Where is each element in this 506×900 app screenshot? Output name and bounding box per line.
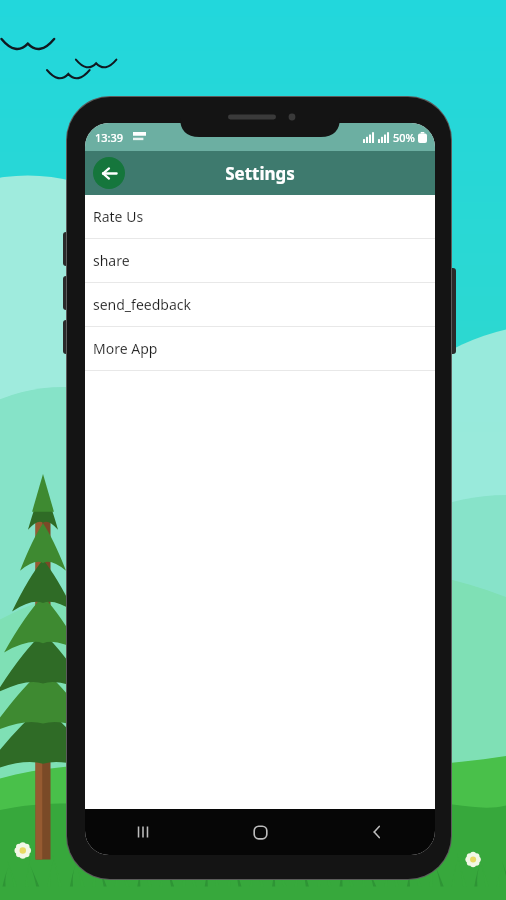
staticText: Rate Us: [93, 207, 144, 226]
staticText: Settings: [225, 162, 295, 185]
staticText: 50%: [393, 130, 415, 145]
button[interactable]: Rate Us: [85, 195, 435, 239]
button[interactable]: Recent apps: [123, 812, 163, 852]
staticText: send_feedback: [93, 295, 191, 314]
button[interactable]: send_feedback: [85, 283, 435, 327]
button[interactable]: Back: [357, 812, 397, 852]
staticText: More App: [93, 339, 158, 358]
button[interactable]: share: [85, 239, 435, 283]
button[interactable]: Home: [240, 812, 280, 852]
staticText: share: [93, 251, 130, 270]
button[interactable]: Back: [93, 157, 125, 189]
staticText: 13:39: [95, 130, 124, 145]
button[interactable]: More App: [85, 327, 435, 371]
